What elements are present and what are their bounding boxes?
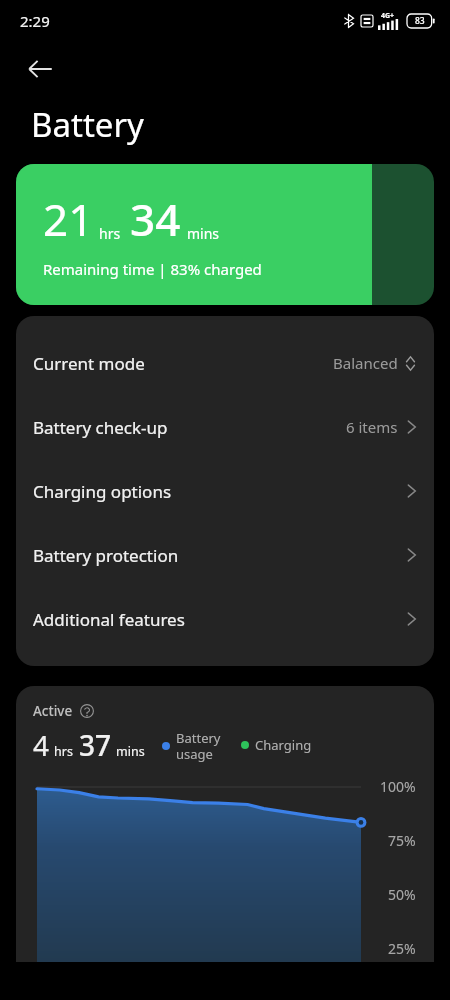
staticText: hrs [99,224,121,243]
staticText: Additional features [33,608,185,631]
staticText: Charging options [33,480,172,503]
staticText: Balanced [333,353,398,373]
button[interactable]: Battery protection [16,523,434,587]
staticText: 6 items [346,417,398,437]
staticText: 37 [79,726,112,764]
staticText: Active [33,702,73,720]
button[interactable]: Charging options [16,459,434,523]
staticText: 2:29 [20,11,50,31]
staticText: Battery check-up [33,416,168,439]
staticText: mins [187,224,220,243]
staticText: 25% [388,939,416,958]
button[interactable]: Additional features [16,587,434,651]
staticText: Remaining time | 83% charged [43,259,262,279]
button[interactable]: Current mode [16,331,434,395]
staticText: Battery [31,102,144,147]
staticText: Charging [255,736,312,754]
staticText: hrs [54,743,73,760]
staticText: 4 [33,726,50,764]
button[interactable]: Back [13,42,67,96]
staticText: Battery protection [33,544,179,567]
staticText: 83 [415,15,425,27]
staticText: 100% [380,777,416,796]
staticText: 50% [388,885,416,904]
staticText: 21 [43,189,94,249]
staticText: 34 [130,189,181,249]
staticText: mins [116,743,145,760]
staticText: Current mode [33,352,145,375]
button[interactable]: Help about active time [77,701,97,721]
button[interactable]: Battery check-up [16,395,434,459]
staticText: Battery usage [176,729,221,762]
staticText: 4G+ [381,11,395,21]
staticText: 75% [388,831,416,850]
button[interactable]: 21 [16,164,434,305]
